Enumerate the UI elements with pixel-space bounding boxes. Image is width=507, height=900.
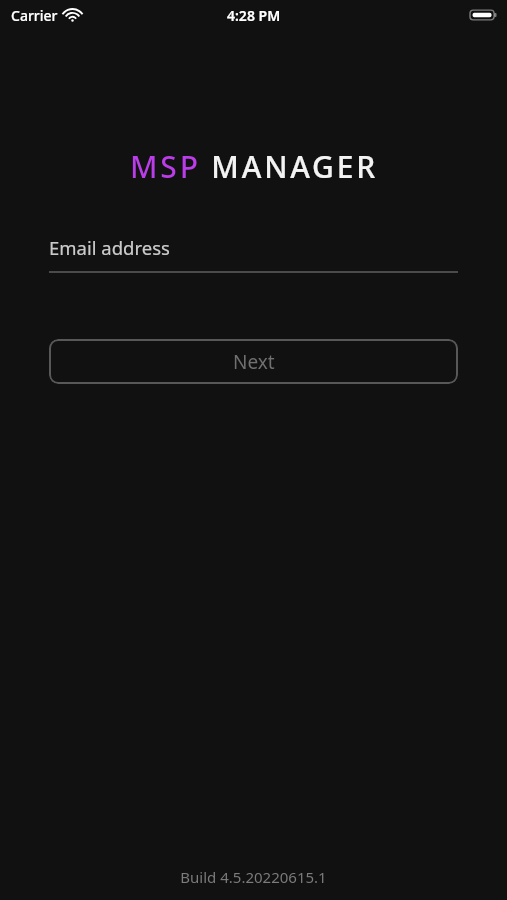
button[interactable]: Next — [49, 339, 458, 384]
other: Battery full — [470, 8, 498, 22]
staticText: MSP MANAGER — [130, 146, 378, 187]
other: Wi-Fi signal — [64, 9, 81, 22]
staticText: Carrier — [11, 6, 58, 25]
staticText: 4:28 PM — [227, 6, 281, 25]
staticText: Email address — [49, 235, 170, 260]
button[interactable]: Email address — [49, 235, 458, 273]
staticText: Next — [233, 349, 275, 375]
staticText: Build 4.5.20220615.1 — [0, 867, 507, 887]
